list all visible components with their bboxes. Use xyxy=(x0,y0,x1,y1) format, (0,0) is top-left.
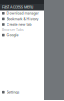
button[interactable]: Download manager xyxy=(0,10,44,16)
staticText: Fast Access Menu xyxy=(2,5,33,9)
staticText: Settings xyxy=(7,90,20,94)
button[interactable]: Google xyxy=(0,32,44,38)
staticText: Browser Tabs xyxy=(2,28,24,32)
staticText: Google xyxy=(7,33,19,37)
staticText: Bookmark & History xyxy=(7,17,39,21)
staticText: Create new tab xyxy=(7,22,32,27)
staticText: Download manager xyxy=(7,11,39,15)
button[interactable]: Bookmark & History xyxy=(0,16,44,22)
button[interactable]: Settings xyxy=(0,89,44,95)
button[interactable]: Create new tab xyxy=(0,22,44,27)
